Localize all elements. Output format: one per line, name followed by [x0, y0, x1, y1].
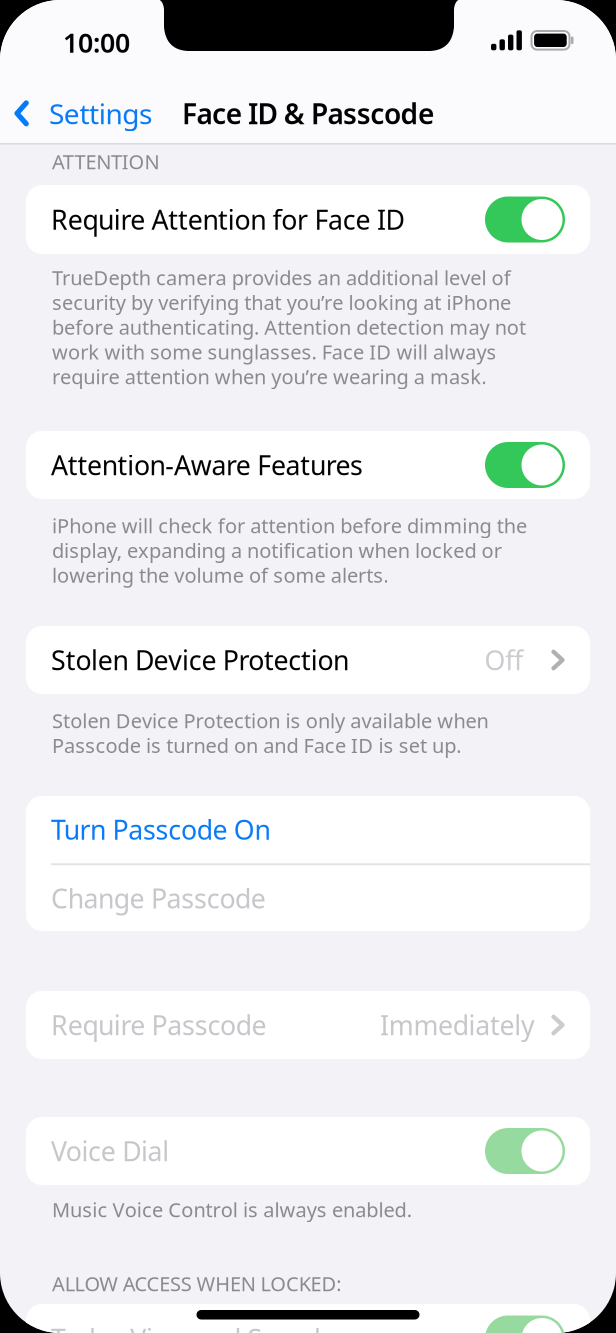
staticText: TrueDepth camera provides an additional …	[52, 265, 526, 389]
staticText: Turn Passcode On	[51, 813, 270, 846]
button[interactable]: Voice Dial	[485, 1128, 565, 1174]
staticText: 10:00	[63, 26, 130, 59]
staticText: Today View and Search	[51, 1322, 330, 1333]
button[interactable]: Require Attention for Face ID	[485, 196, 565, 242]
staticText: Immediately	[380, 1008, 535, 1042]
staticText: ATTENTION	[52, 149, 159, 174]
staticText: Require Passcode	[51, 1008, 266, 1042]
staticText: Change Passcode	[51, 882, 266, 915]
staticText: Off	[485, 643, 523, 677]
button[interactable]: Today View and Search	[485, 1315, 565, 1333]
button[interactable]: Attention-Aware Features	[485, 442, 565, 488]
staticText: Attention-Aware Features	[51, 448, 363, 482]
staticText: iPhone will check for attention before d…	[52, 513, 527, 587]
staticText: ALLOW ACCESS WHEN LOCKED:	[52, 1271, 341, 1296]
button[interactable]: Stolen Device Protection	[26, 626, 590, 694]
staticText: Stolen Device Protection is only availab…	[52, 708, 489, 758]
staticText: Voice Dial	[51, 1134, 169, 1168]
button[interactable]: Back to Settings	[14, 96, 152, 131]
staticText: Music Voice Control is always enabled.	[52, 1197, 412, 1222]
staticText: Face ID & Passcode	[182, 96, 434, 131]
button[interactable]: Change Passcode	[26, 865, 590, 931]
button[interactable]: Require Passcode	[26, 991, 590, 1059]
button[interactable]: Turn Passcode On	[26, 796, 590, 863]
staticText: Stolen Device Protection	[51, 643, 349, 677]
staticText: Require Attention for Face ID	[51, 203, 405, 236]
staticText: Settings	[49, 96, 152, 131]
